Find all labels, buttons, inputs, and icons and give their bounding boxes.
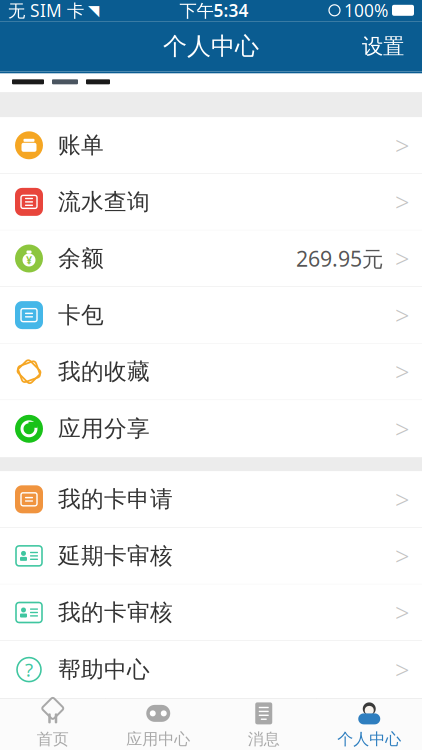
staticText: 流水查询 bbox=[58, 188, 150, 216]
button[interactable]: 我的卡申请 bbox=[0, 471, 422, 528]
staticText: 下午5:34 bbox=[179, 0, 248, 22]
staticText: > bbox=[395, 128, 409, 162]
staticText: > bbox=[395, 298, 409, 332]
button[interactable]: 应用分享 bbox=[0, 400, 422, 457]
staticText: 账单 bbox=[58, 131, 104, 159]
staticText: > bbox=[395, 539, 409, 573]
staticText: 无 SIM 卡 bbox=[8, 0, 84, 22]
button[interactable]: 设置 bbox=[350, 25, 416, 67]
staticText: ◥ bbox=[88, 2, 99, 19]
staticText: ¥ bbox=[26, 253, 32, 267]
button[interactable]: 我的收藏 bbox=[0, 344, 422, 400]
staticText: 应用中心 bbox=[126, 729, 190, 749]
staticText: > bbox=[395, 185, 409, 219]
button[interactable]: 流水查询 bbox=[0, 174, 422, 230]
staticText: > bbox=[395, 482, 409, 516]
button[interactable]: ¥ bbox=[0, 230, 422, 287]
staticText: 我的收藏 bbox=[58, 358, 150, 386]
staticText: 设置 bbox=[362, 33, 404, 59]
staticText: 个人中心 bbox=[163, 32, 259, 61]
button[interactable]: 个人中心 bbox=[316, 699, 422, 750]
staticText: > bbox=[395, 412, 409, 446]
staticText: 首页 bbox=[37, 729, 69, 749]
staticText: 我的卡申请 bbox=[58, 485, 173, 513]
button[interactable]: 延期卡审核 bbox=[0, 528, 422, 584]
staticText: 延期卡审核 bbox=[58, 542, 173, 570]
button[interactable]: 首页 bbox=[0, 699, 105, 750]
staticText: 应用分享 bbox=[58, 415, 150, 443]
staticText: 卡包 bbox=[58, 301, 104, 329]
button[interactable]: 应用中心 bbox=[105, 699, 211, 750]
button[interactable]: 账单 bbox=[0, 117, 422, 174]
staticText: 269.95元 bbox=[296, 244, 383, 273]
button[interactable]: 消息 bbox=[211, 699, 316, 750]
staticText: 我的卡审核 bbox=[58, 599, 173, 626]
staticText: > bbox=[395, 653, 409, 686]
staticText: 个人中心 bbox=[337, 729, 401, 749]
staticText: > bbox=[395, 355, 409, 388]
staticText: > bbox=[395, 596, 409, 629]
staticText: 帮助中心 bbox=[58, 656, 150, 683]
staticText: 余额 bbox=[58, 245, 104, 272]
button[interactable]: 卡包 bbox=[0, 287, 422, 344]
button[interactable]: 我的卡审核 bbox=[0, 584, 422, 641]
staticText: 消息 bbox=[248, 729, 280, 749]
staticText: ? bbox=[25, 657, 33, 682]
staticText: 100% bbox=[344, 0, 388, 22]
staticText: > bbox=[395, 242, 409, 275]
button[interactable]: ? bbox=[0, 641, 422, 698]
